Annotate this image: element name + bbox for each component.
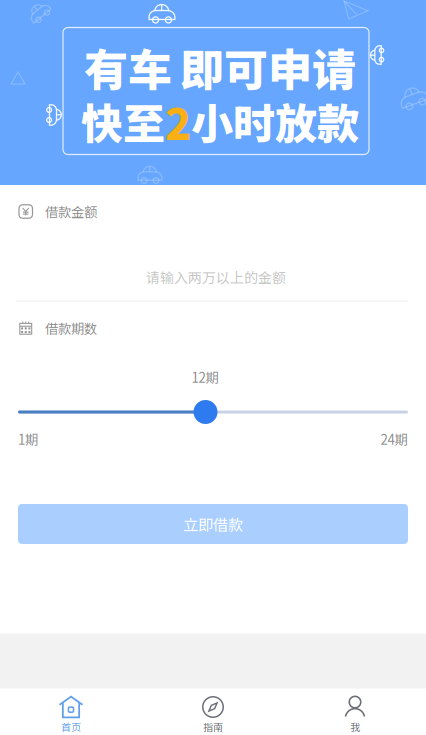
staticText: 指南 [203,719,223,734]
staticText: 借款期数 [45,318,97,338]
button[interactable]: 首页 [0,689,142,735]
button[interactable]: 立即借款 [18,504,408,544]
staticText: 请输入两万以上的金额 [146,267,286,287]
staticText: 12期 [191,367,218,387]
staticText: 我 [350,719,360,734]
staticText: 借款金额 [45,202,97,221]
staticText: 即可申请 [180,35,356,99]
staticText: 小时放款 [191,91,359,151]
staticText: 1期 [18,429,38,449]
button[interactable]: 我 [284,689,426,735]
staticText: 快至 [81,91,165,151]
staticText: 有车 [84,35,172,99]
staticText: 2 [165,90,191,152]
staticText: 首页 [61,719,81,734]
staticText: 立即借款 [183,513,243,535]
button[interactable]: 指南 [142,689,284,735]
staticText: 24期 [380,429,407,449]
